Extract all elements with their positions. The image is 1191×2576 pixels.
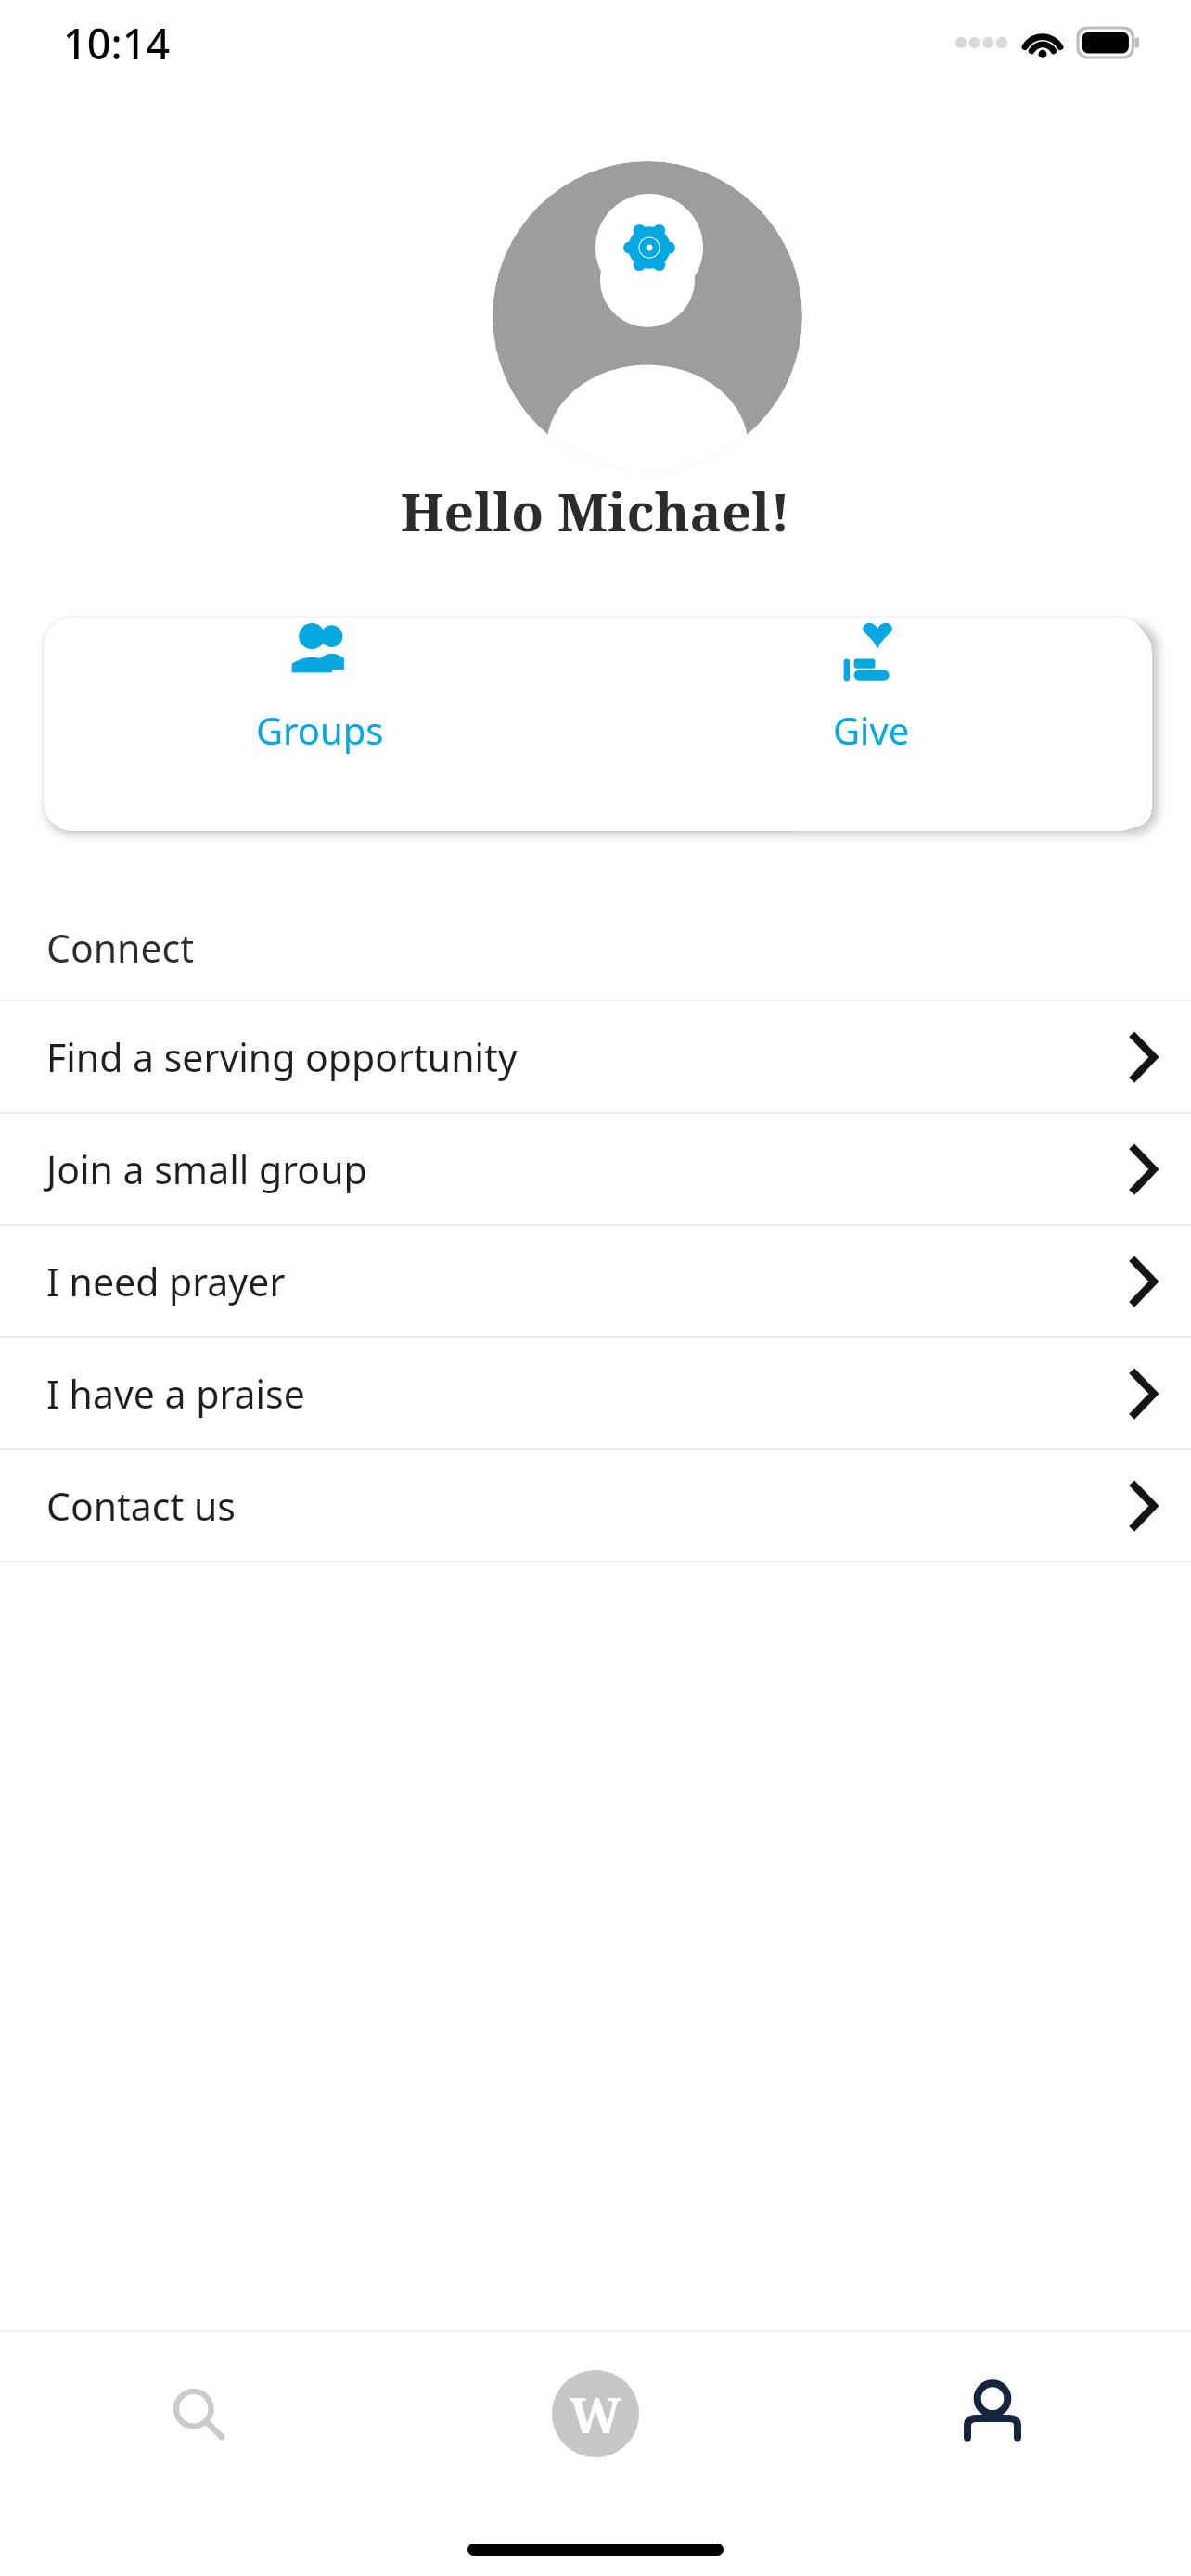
- button[interactable]: Give: [595, 618, 1147, 755]
- button[interactable]: Home: [397, 2330, 794, 2497]
- button[interactable]: Profile: [794, 2330, 1191, 2497]
- staticText: Give: [833, 705, 910, 755]
- button[interactable]: Join a small group: [0, 1114, 1191, 1226]
- staticText: Join a small group: [46, 1143, 367, 1195]
- button[interactable]: Settings: [595, 194, 703, 301]
- staticText: Groups: [256, 705, 384, 755]
- staticText: Find a serving opportunity: [46, 1031, 518, 1083]
- staticText: Hello Michael!: [0, 475, 1191, 547]
- button[interactable]: Groups: [44, 618, 595, 755]
- button[interactable]: Search: [0, 2330, 397, 2497]
- staticText: I have a praise: [46, 1368, 305, 1420]
- button[interactable]: I need prayer: [0, 1226, 1191, 1338]
- staticText: Connect: [46, 922, 194, 974]
- button[interactable]: Contact us: [0, 1450, 1191, 1562]
- staticText: 10:14: [63, 15, 171, 71]
- staticText: Contact us: [46, 1480, 236, 1532]
- button[interactable]: I have a praise: [0, 1338, 1191, 1450]
- button[interactable]: Find a serving opportunity: [0, 1001, 1191, 1114]
- staticText: W: [570, 2381, 621, 2447]
- staticText: I need prayer: [46, 1256, 286, 1307]
